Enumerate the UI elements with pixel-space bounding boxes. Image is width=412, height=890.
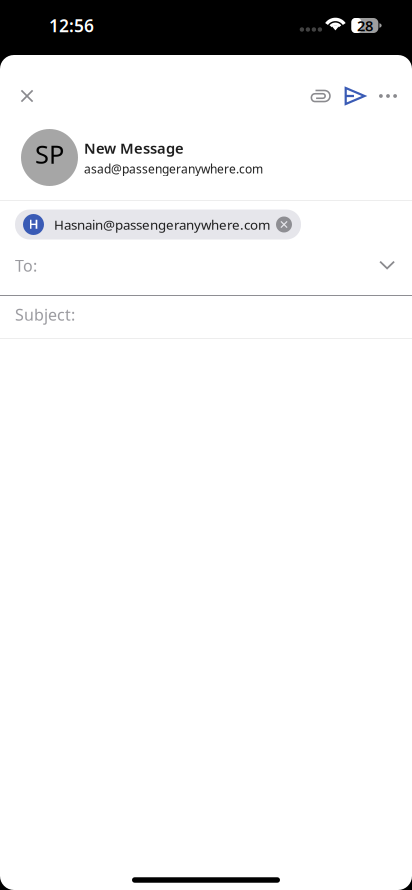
staticText: Subject: (15, 304, 75, 325)
button[interactable]: Close (5, 74, 49, 118)
staticText: Hasnain@passengeranywhere.com (54, 216, 270, 233)
button[interactable]: Send (335, 74, 369, 118)
staticText: New Message (84, 138, 184, 158)
button[interactable]: More options (369, 74, 407, 118)
staticText: H (28, 215, 38, 232)
staticText: asad@passengeranywhere.com (84, 161, 263, 177)
button[interactable]: H (15, 209, 301, 239)
staticText: 12:56 (49, 14, 94, 37)
button[interactable]: Attach file (293, 74, 335, 118)
button[interactable]: To: (0, 239, 412, 295)
staticText: To: (15, 255, 37, 276)
button[interactable]: Subject: (0, 296, 412, 338)
staticText: SP (35, 137, 64, 171)
staticText: 28 (357, 16, 373, 35)
